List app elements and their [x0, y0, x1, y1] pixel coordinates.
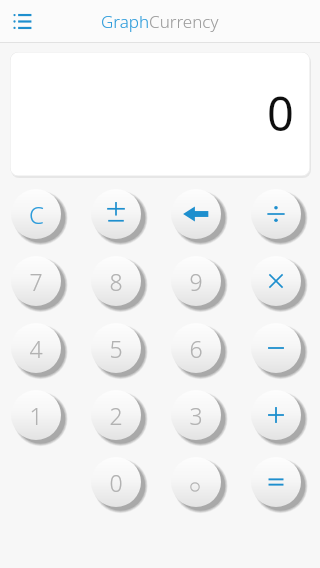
staticText: C: [29, 198, 44, 231]
button[interactable]: Decimal point: [171, 457, 229, 515]
button[interactable]: 3: [171, 390, 229, 448]
button[interactable]: 4: [11, 323, 69, 381]
staticText: 0: [109, 467, 123, 498]
staticText: 4: [29, 333, 43, 364]
staticText: 2: [109, 400, 123, 431]
button[interactable]: Plus: [251, 390, 309, 448]
button[interactable]: Backspace: [171, 189, 229, 247]
staticText: GraphCurrency: [101, 10, 219, 33]
staticText: 8: [109, 266, 123, 297]
staticText: 3: [189, 400, 203, 431]
staticText: 7: [29, 266, 43, 297]
button[interactable]: 1: [11, 390, 69, 448]
button[interactable]: 9: [171, 256, 229, 314]
button[interactable]: 8: [91, 256, 149, 314]
button[interactable]: Minus: [251, 323, 309, 381]
staticText: 6: [189, 333, 203, 364]
button[interactable]: 2: [91, 390, 149, 448]
button[interactable]: 0: [91, 457, 149, 515]
button[interactable]: 7: [11, 256, 69, 314]
staticText: 1: [29, 400, 43, 431]
button[interactable]: 6: [171, 323, 229, 381]
staticText: 0: [267, 81, 294, 145]
staticText: 5: [109, 333, 123, 364]
button[interactable]: Clear: [11, 189, 69, 247]
button[interactable]: Menu: [7, 6, 37, 36]
button[interactable]: Multiply: [251, 256, 309, 314]
button[interactable]: Equals: [251, 457, 309, 515]
button[interactable]: 5: [91, 323, 149, 381]
staticText: 9: [189, 266, 203, 297]
button[interactable]: Divide: [251, 189, 309, 247]
button[interactable]: Plus minus: [91, 189, 149, 247]
